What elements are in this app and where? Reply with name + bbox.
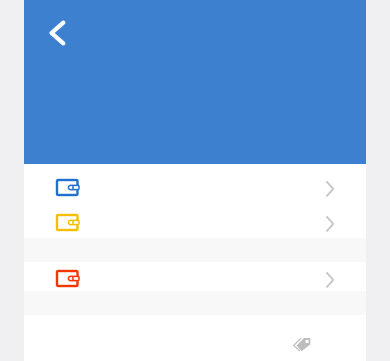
button[interactable]: Payment method: [24, 203, 366, 238]
button[interactable]: Back: [35, 11, 79, 55]
button[interactable]: Payment method: [24, 168, 366, 203]
button[interactable]: Payment method: [24, 262, 366, 291]
button[interactable]: Tags: [285, 327, 319, 361]
